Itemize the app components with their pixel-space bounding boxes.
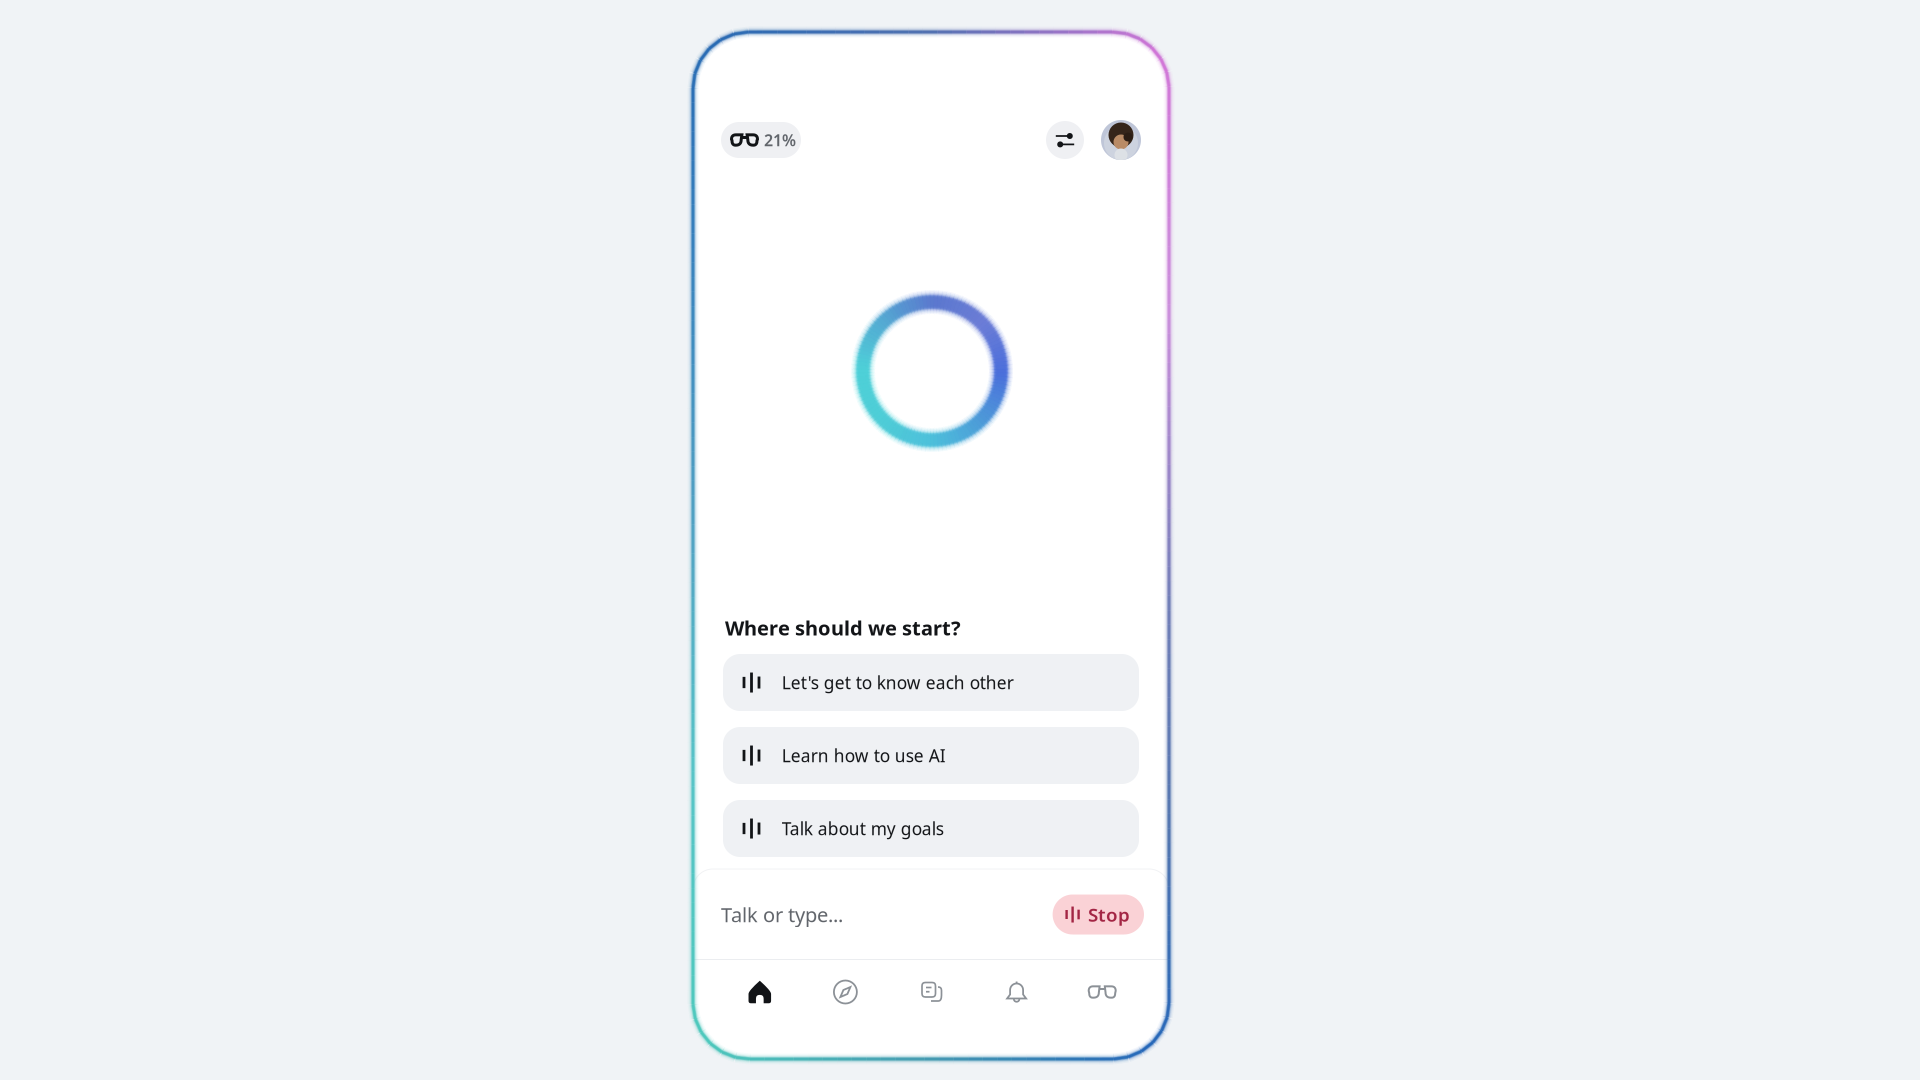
button[interactable]: Notifications bbox=[974, 979, 1059, 1004]
button[interactable]: Stop bbox=[1053, 894, 1144, 934]
button[interactable]: Discover bbox=[803, 979, 888, 1004]
staticText: Let's get to know each other bbox=[782, 671, 1014, 694]
button[interactable]: 21% bbox=[721, 122, 801, 158]
staticText: Where should we start? bbox=[725, 614, 961, 641]
button[interactable]: Settings bbox=[1046, 121, 1084, 159]
staticText: 21% bbox=[764, 129, 796, 151]
button[interactable]: Glasses bbox=[1059, 985, 1145, 999]
staticText: Talk or type... bbox=[721, 901, 843, 928]
button[interactable]: Learn how to use AI bbox=[723, 727, 1139, 784]
button[interactable]: Chats bbox=[888, 979, 974, 1004]
button[interactable]: Talk about my goals bbox=[723, 800, 1139, 857]
staticText: Talk about my goals bbox=[782, 817, 944, 840]
button[interactable]: Home bbox=[717, 980, 803, 1004]
staticText: Stop bbox=[1088, 902, 1130, 927]
staticText: Learn how to use AI bbox=[782, 744, 946, 767]
button[interactable]: Let's get to know each other bbox=[723, 654, 1139, 711]
button[interactable]: Profile bbox=[1101, 120, 1141, 160]
